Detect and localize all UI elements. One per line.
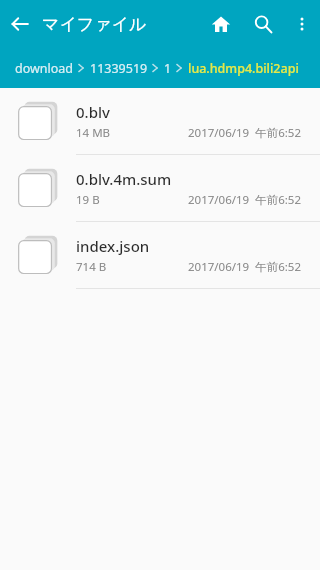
staticText: 2017/06/19 午前6:52 (188, 259, 308, 275)
button[interactable]: index.json (0, 222, 320, 289)
staticText: 0.blv.4m.sum (76, 169, 172, 189)
staticText: 2017/06/19 午前6:52 (188, 192, 308, 208)
button[interactable]: 11339519 (90, 60, 148, 77)
staticText: マイファイル (42, 14, 147, 35)
button[interactable]: download (15, 60, 74, 77)
staticText: 19 B (76, 192, 100, 208)
staticText: 714 B (76, 259, 107, 275)
staticText: 11339519 (90, 60, 148, 77)
button[interactable]: lua.hdmp4.bili2api (188, 60, 299, 77)
button[interactable]: Back (0, 0, 40, 48)
staticText: download (15, 60, 74, 77)
staticText: index.json (76, 236, 150, 256)
button[interactable]: 0.blv (0, 88, 320, 155)
staticText: 2017/06/19 午前6:52 (188, 125, 308, 141)
staticText: 1 (164, 60, 172, 77)
button[interactable]: More options (284, 0, 320, 48)
button[interactable]: Search (242, 0, 284, 48)
staticText: lua.hdmp4.bili2api (188, 60, 299, 77)
button[interactable]: 1 (164, 60, 172, 77)
staticText: 14 MB (76, 125, 111, 141)
button[interactable]: 0.blv.4m.sum (0, 155, 320, 222)
button[interactable]: Home (200, 0, 242, 48)
staticText: 0.blv (76, 102, 110, 122)
